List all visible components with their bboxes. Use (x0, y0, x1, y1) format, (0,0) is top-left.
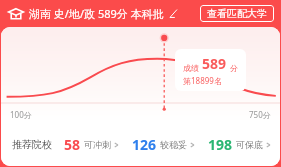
staticText: 分 (230, 63, 238, 73)
other: 学历 (8, 6, 24, 22)
staticText: 589 (202, 54, 227, 73)
staticText: 58 (64, 135, 81, 154)
staticText: 第18899名 (183, 75, 222, 86)
staticText: 较稳妥 (160, 139, 187, 150)
staticText: 湖南 史/地/政 589分 本科批 (29, 6, 164, 21)
staticText: 126 (132, 135, 157, 154)
button[interactable]: 成绩 (175, 49, 246, 91)
button[interactable]: 58 (64, 131, 119, 158)
staticText: 推荐院校 (12, 138, 52, 151)
staticText: 750分 (249, 109, 271, 120)
staticText: 可冲刺 (84, 139, 111, 150)
staticText: 198 (208, 135, 233, 154)
button[interactable]: 编辑 (168, 8, 179, 19)
button[interactable]: 126 (132, 131, 195, 158)
button[interactable]: 查看匹配大学 (200, 5, 274, 22)
staticText: 查看匹配大学 (207, 7, 267, 20)
staticText: 可保底 (236, 139, 263, 150)
button[interactable]: 198 (208, 131, 271, 158)
staticText: 100分 (10, 109, 32, 120)
staticText: 成绩 (183, 63, 199, 73)
